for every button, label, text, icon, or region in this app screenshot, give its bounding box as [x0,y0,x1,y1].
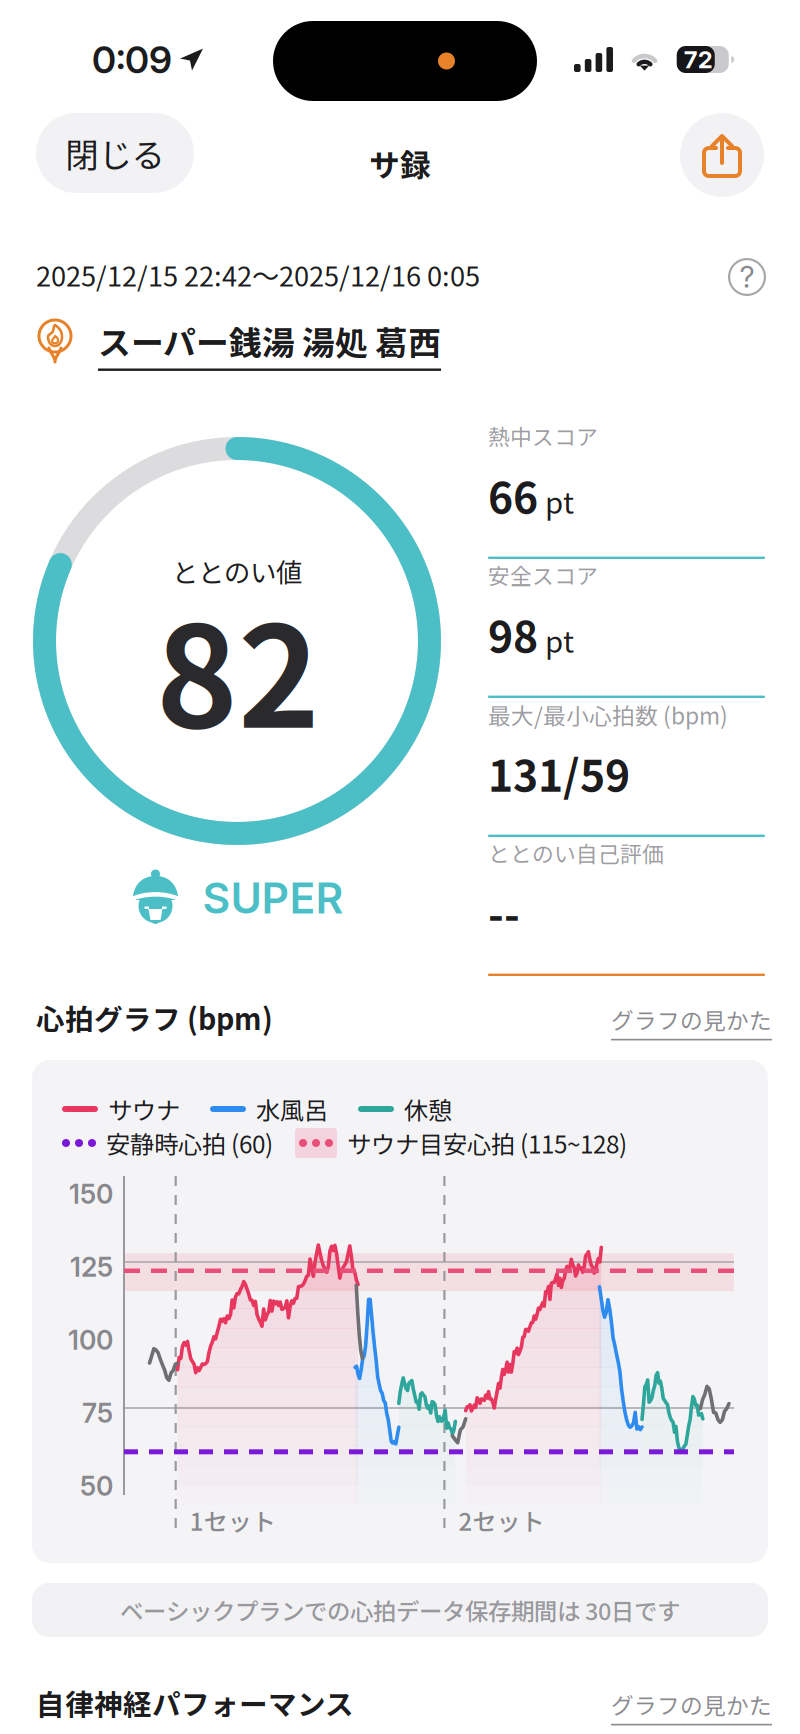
staticText: 閉じる [65,129,164,177]
staticText: -- [488,881,520,943]
staticText: 75 [82,1397,113,1429]
staticText: SUPER [202,872,343,924]
staticText: 自律神経パフォーマンス [36,1682,354,1723]
staticText: サウナ目安心拍 (115~128) [347,1125,627,1160]
button[interactable]: グラフの見かた [611,1003,772,1040]
staticText: 熱中スコア [488,420,598,451]
staticText: ? [739,259,754,295]
button[interactable]: スーパー銭湯 湯処 葛西 [98,317,441,371]
staticText: 水風呂 [256,1091,328,1126]
staticText: 安全スコア [488,559,598,590]
staticText: スーパー銭湯 湯処 葛西 [98,317,441,364]
staticText: 50 [80,1470,113,1502]
staticText: 心拍グラフ (bpm) [36,997,273,1038]
staticText: 1セット [190,1503,276,1538]
staticText: ととのい値 [172,552,302,590]
staticText: 100 [68,1324,113,1356]
staticText: ベーシックプランでの心拍データ保存期間は 30日です [120,1593,680,1627]
staticText: 131/59 [488,742,630,804]
staticText: 66 [488,464,538,526]
staticText: 0:09 [92,37,172,82]
staticText: pt [545,480,574,522]
staticText: 安静時心拍 (60) [106,1125,273,1160]
staticText: 72 [684,45,713,74]
staticText: 125 [70,1251,113,1283]
staticText: 150 [69,1178,113,1210]
staticText: 2025/12/15 22:42〜2025/12/16 0:05 [36,255,480,294]
staticText: 最大/最小心拍数 (bpm) [488,698,728,731]
staticText: グラフの見かた [611,1003,772,1036]
staticText: 2セット [458,1503,544,1538]
button[interactable]: グラフの見かた [611,1688,772,1725]
button[interactable]: ヘルプ [728,258,766,296]
staticText: ととのい自己評価 [488,837,664,868]
button[interactable]: 閉じる [36,113,194,193]
staticText: サ録 [369,141,431,185]
staticText: サウナ [108,1091,180,1126]
staticText: pt [545,619,574,661]
staticText: 休憩 [404,1091,452,1126]
staticText: グラフの見かた [611,1688,772,1721]
staticText: 98 [488,603,538,665]
staticText: 82 [156,567,320,768]
button[interactable]: 共有 [680,113,764,197]
